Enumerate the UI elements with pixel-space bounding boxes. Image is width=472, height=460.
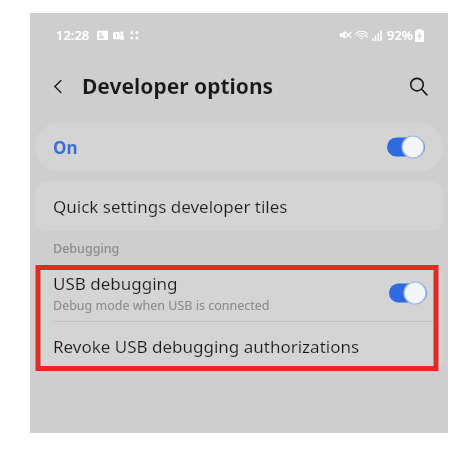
button[interactable]: USB debugging [35, 265, 443, 321]
staticText: Debugging [53, 240, 120, 257]
button[interactable]: Navigate up [40, 68, 76, 104]
staticText: Developer options [82, 72, 274, 101]
staticText: 12:28 [56, 26, 90, 44]
staticText: On [53, 136, 78, 159]
staticText: USB debugging [53, 272, 178, 295]
staticText: 92% [387, 26, 413, 44]
staticText: Quick settings developer tiles [53, 195, 288, 218]
button[interactable]: On [35, 123, 443, 171]
button[interactable]: Quick settings developer tiles [35, 182, 443, 231]
staticText: Revoke USB debugging authorizations [53, 335, 360, 358]
staticText: Debug mode when USB is connected [53, 297, 270, 314]
button[interactable]: Revoke USB debugging authorizations [35, 322, 443, 371]
button[interactable]: Search [400, 68, 436, 104]
